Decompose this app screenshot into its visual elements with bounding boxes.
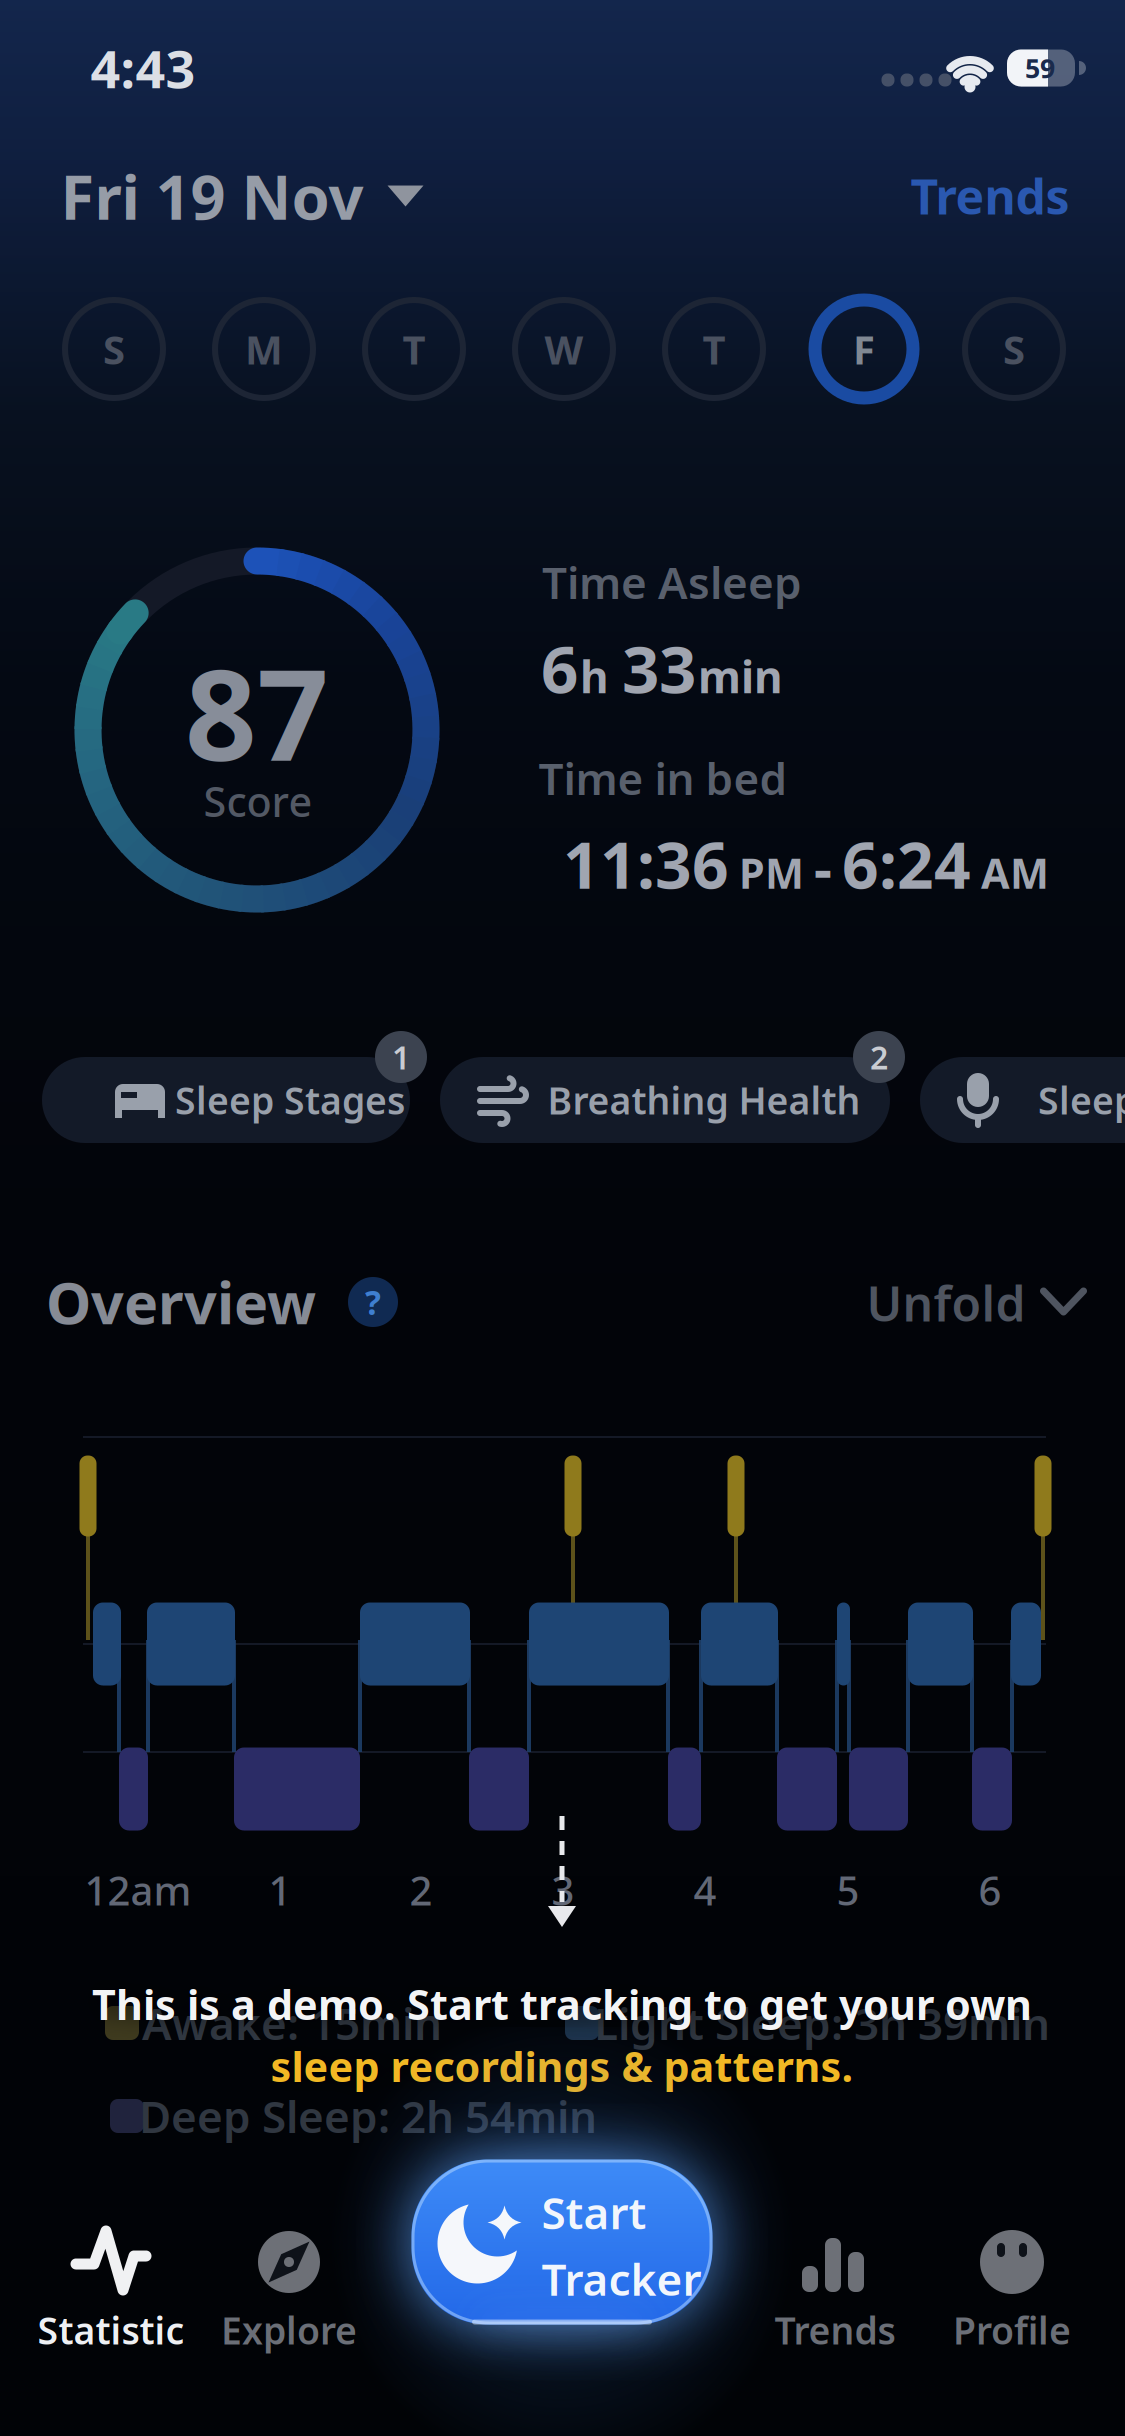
staticText: 2 bbox=[409, 1863, 432, 1916]
staticText: This is a demo. Start tracking to get yo… bbox=[92, 1977, 1032, 2031]
button[interactable]: Day W bbox=[510, 295, 618, 403]
button[interactable]: Start bbox=[411, 2159, 712, 2324]
button[interactable]: Day S bbox=[60, 295, 168, 403]
staticText: Sleep Stages bbox=[175, 1075, 405, 1125]
button[interactable]: Sleep Stages bbox=[42, 1057, 410, 1143]
staticText: Light Sleep: 3h 39min bbox=[594, 1994, 1050, 2052]
staticText: T bbox=[702, 322, 725, 375]
staticText: T bbox=[402, 322, 425, 375]
button[interactable]: Sleep Rec bbox=[920, 1057, 1125, 1143]
staticText: Time Asleep bbox=[542, 553, 802, 611]
button[interactable]: Trends bbox=[910, 164, 1069, 228]
button[interactable]: Explore bbox=[189, 2213, 389, 2373]
staticText: F bbox=[853, 322, 875, 375]
button[interactable]: Fri 19 Nov bbox=[60, 155, 423, 237]
staticText: M bbox=[245, 322, 283, 375]
staticText: Score bbox=[203, 774, 312, 828]
staticText: PM bbox=[739, 845, 804, 900]
staticText: 6 bbox=[541, 625, 578, 711]
button[interactable]: Day S bbox=[960, 295, 1068, 403]
staticText: Unfold bbox=[866, 1271, 1025, 1335]
staticText: 5 bbox=[836, 1863, 859, 1916]
staticText: Fri 19 Nov bbox=[60, 155, 363, 237]
staticText: 12am bbox=[84, 1863, 191, 1916]
staticText: Tracker bbox=[541, 2249, 701, 2308]
button[interactable]: Help bbox=[348, 1277, 398, 1327]
staticText: Trends bbox=[910, 164, 1069, 228]
staticText: - bbox=[814, 830, 832, 904]
staticText: 4 bbox=[693, 1863, 716, 1916]
button[interactable]: Trends bbox=[735, 2213, 935, 2373]
staticText: ? bbox=[365, 1280, 381, 1324]
staticText: 1 bbox=[268, 1863, 291, 1916]
staticText: S bbox=[1003, 322, 1025, 375]
staticText: 2 bbox=[870, 1036, 888, 1078]
staticText: 87 bbox=[185, 629, 329, 795]
button[interactable]: Day F bbox=[810, 295, 918, 403]
staticText: Time in bed bbox=[538, 749, 787, 807]
staticText: sleep recordings & patterns. bbox=[270, 2039, 853, 2093]
button[interactable]: Profile bbox=[912, 2213, 1112, 2373]
staticText: W bbox=[544, 322, 583, 375]
button[interactable]: Breathing Health bbox=[440, 1057, 890, 1143]
button[interactable]: Day T bbox=[360, 295, 468, 403]
staticText: Breathing Health bbox=[547, 1075, 860, 1125]
button[interactable]: Day T bbox=[660, 295, 768, 403]
staticText: 1 bbox=[392, 1036, 410, 1078]
staticText: 33 bbox=[622, 625, 696, 711]
staticText: 4:43 bbox=[90, 33, 195, 103]
staticText: min bbox=[698, 647, 783, 705]
staticText: Explore bbox=[221, 2305, 357, 2355]
staticText: Statistic bbox=[37, 2305, 184, 2355]
staticText: Profile bbox=[953, 2305, 1071, 2355]
staticText: Overview bbox=[46, 1264, 316, 1340]
staticText: Trends bbox=[774, 2305, 895, 2355]
button[interactable]: Day M bbox=[210, 295, 318, 403]
staticText: Sleep Rec bbox=[1038, 1075, 1125, 1125]
staticText: 6 bbox=[978, 1863, 1001, 1916]
staticText: 11:36 bbox=[563, 821, 729, 906]
button[interactable]: Unfold bbox=[866, 1271, 1083, 1335]
staticText: h bbox=[580, 647, 620, 705]
staticText: 3 bbox=[551, 1863, 574, 1916]
staticText: Start bbox=[541, 2183, 646, 2241]
staticText: 6:24 bbox=[842, 821, 971, 906]
button[interactable]: Statistic bbox=[11, 2213, 211, 2373]
staticText: Awake: 15min bbox=[142, 1994, 442, 2052]
staticText: Deep Sleep: 2h 54min bbox=[139, 2087, 597, 2145]
staticText: AM bbox=[981, 845, 1049, 900]
staticText: S bbox=[103, 322, 125, 375]
staticText: 59 bbox=[1025, 50, 1055, 86]
